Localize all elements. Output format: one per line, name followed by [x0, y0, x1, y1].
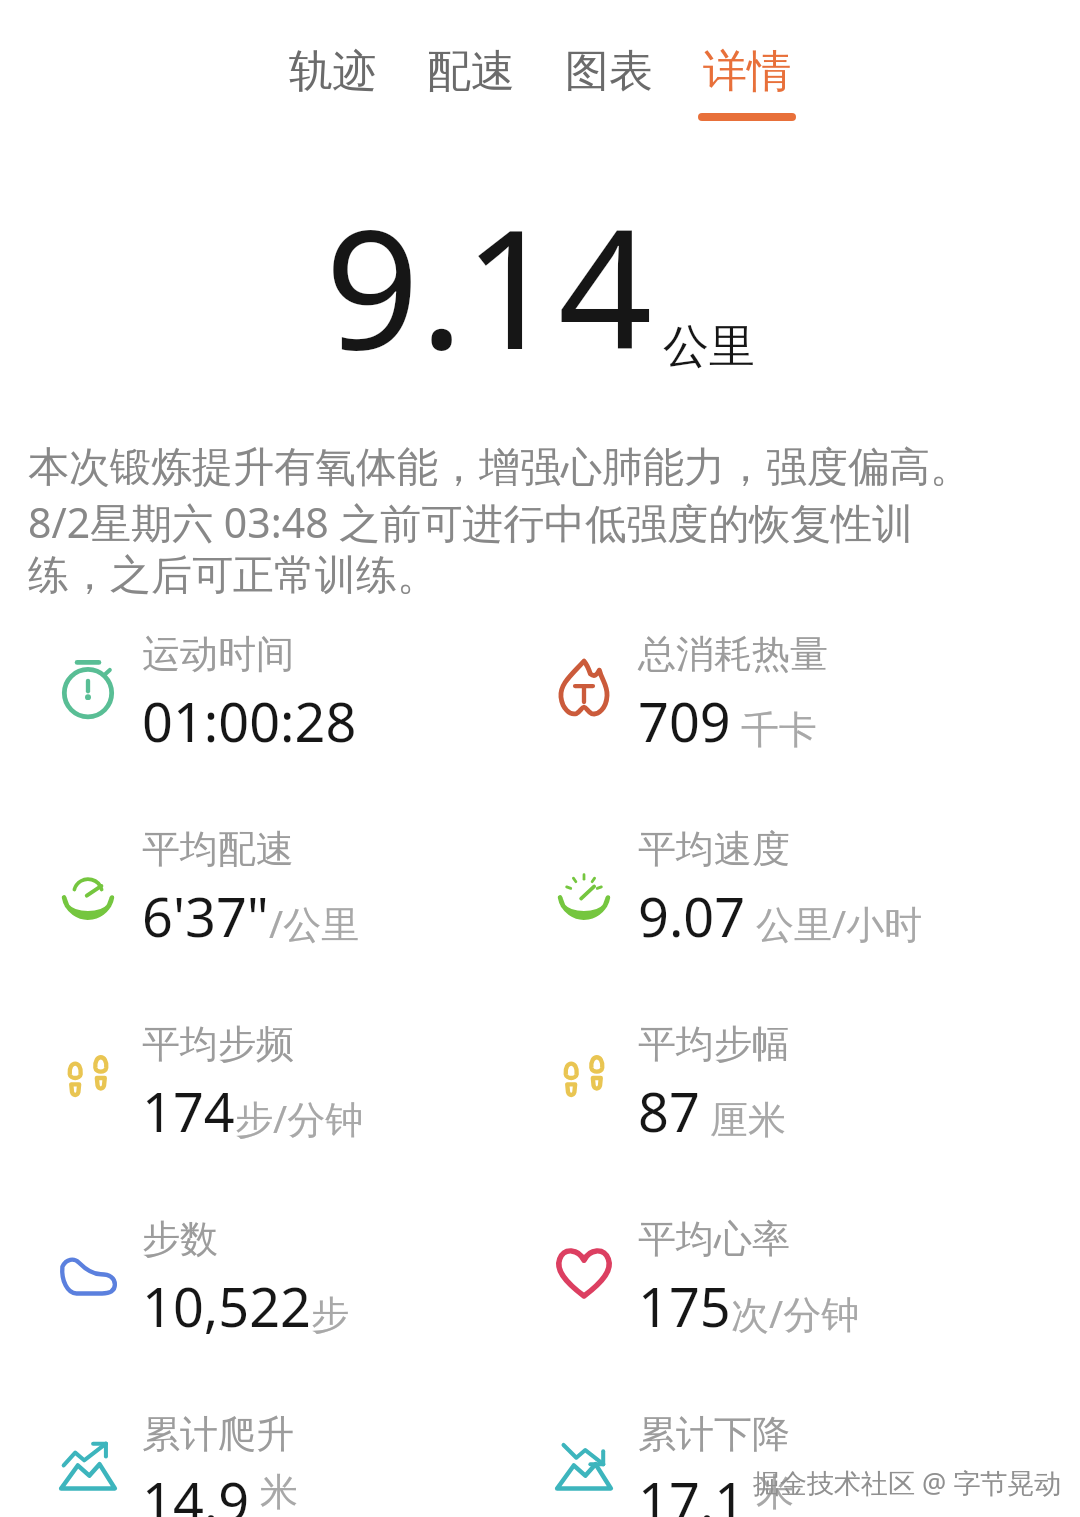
staticText: 17.1: [638, 1464, 746, 1517]
staticText: 练，之后可正常训练。: [28, 550, 438, 602]
button[interactable]: 图表: [554, 44, 664, 121]
staticText: /公里: [269, 897, 360, 949]
other: 平均步频: [56, 1046, 120, 1110]
staticText: 87: [638, 1074, 700, 1148]
staticText: 10,522: [142, 1269, 311, 1343]
staticText: 步/分钟: [235, 1092, 364, 1144]
staticText: 步数: [142, 1215, 218, 1263]
button[interactable]: 配速: [416, 44, 526, 121]
button[interactable]: 详情: [692, 44, 802, 121]
staticText: 9.14: [325, 173, 653, 398]
other: 累计爬升: [56, 1436, 120, 1500]
other: 平均速度: [552, 851, 616, 915]
staticText: 掘金技术社区 @ 字节晃动: [753, 1464, 1062, 1501]
staticText: 千卡: [731, 702, 817, 754]
staticText: 平均心率: [638, 1215, 790, 1263]
button[interactable]: 累计下降: [552, 1406, 1080, 1517]
button[interactable]: 总消耗热量: [552, 626, 1080, 821]
staticText: 9.07: [638, 879, 746, 953]
button[interactable]: 轨迹: [278, 44, 388, 121]
staticText: 总消耗热量: [638, 630, 828, 678]
other: 平均步幅: [552, 1046, 616, 1110]
staticText: 174: [142, 1074, 235, 1148]
button[interactable]: 累计爬升: [56, 1406, 540, 1517]
staticText: 14.9: [142, 1464, 250, 1517]
button[interactable]: 平均速度: [552, 821, 1080, 1016]
other: 平均心率: [552, 1241, 616, 1305]
staticText: 配速: [427, 44, 515, 99]
other: 累计下降: [552, 1436, 616, 1500]
other: 总消耗热量: [552, 656, 616, 720]
staticText: 本次锻炼提升有氧体能，增强心肺能力，强度偏高。: [28, 442, 971, 494]
staticText: 709: [638, 684, 731, 758]
staticText: 平均速度: [638, 825, 790, 873]
staticText: 详情: [703, 44, 791, 99]
staticText: 平均步频: [142, 1020, 294, 1068]
staticText: 图表: [565, 44, 653, 99]
other: 运动时间: [56, 656, 120, 720]
staticText: 米: [746, 1464, 794, 1513]
staticText: 公里/小时: [746, 897, 923, 949]
staticText: 公里: [663, 318, 755, 376]
staticText: 累计下降: [638, 1410, 790, 1458]
staticText: 步: [311, 1291, 349, 1339]
staticText: 01:00:28: [142, 684, 357, 758]
button[interactable]: 平均配速: [56, 821, 540, 1016]
staticText: 平均配速: [142, 825, 294, 873]
button[interactable]: 平均步频: [56, 1016, 540, 1211]
staticText: 8/2星期六 03:48 之前可进行中低强度的恢复性训: [28, 494, 914, 550]
staticText: 175: [638, 1269, 731, 1343]
button[interactable]: 平均心率: [552, 1211, 1080, 1406]
other: 步数: [56, 1241, 120, 1305]
staticText: 次/分钟: [731, 1287, 860, 1339]
staticText: 累计爬升: [142, 1410, 294, 1458]
staticText: 轨迹: [289, 44, 377, 99]
staticText: 6'37": [142, 879, 269, 953]
button[interactable]: 运动时间: [56, 626, 540, 821]
staticText: 厘米: [700, 1092, 786, 1144]
button[interactable]: 步数: [56, 1211, 540, 1406]
button[interactable]: 平均步幅: [552, 1016, 1080, 1211]
staticText: 平均步幅: [638, 1020, 790, 1068]
other: 平均配速: [56, 851, 120, 915]
staticText: 米: [250, 1464, 298, 1513]
staticText: 运动时间: [142, 630, 294, 678]
